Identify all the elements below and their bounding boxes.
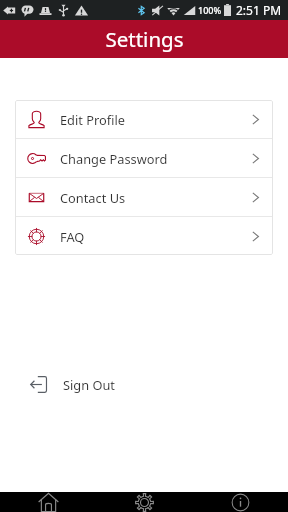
- staticText: 100%: [198, 4, 222, 16]
- staticText: Contact Us: [60, 189, 126, 206]
- button[interactable]: Info: [192, 492, 288, 512]
- button[interactable]: Contact Us: [15, 178, 273, 216]
- staticText: FAQ: [60, 228, 85, 245]
- button[interactable]: Home: [0, 492, 96, 512]
- button[interactable]: Change Password: [15, 139, 273, 177]
- button[interactable]: Settings: [96, 492, 192, 512]
- staticText: Sign Out: [63, 376, 115, 393]
- button[interactable]: Edit Profile: [15, 100, 273, 138]
- staticText: 2:51 PM: [236, 2, 282, 18]
- button[interactable]: Sign Out: [0, 367, 288, 401]
- staticText: Edit Profile: [60, 111, 125, 128]
- staticText: Settings: [105, 25, 184, 53]
- staticText: Change Password: [60, 150, 168, 167]
- button[interactable]: FAQ: [15, 217, 273, 255]
